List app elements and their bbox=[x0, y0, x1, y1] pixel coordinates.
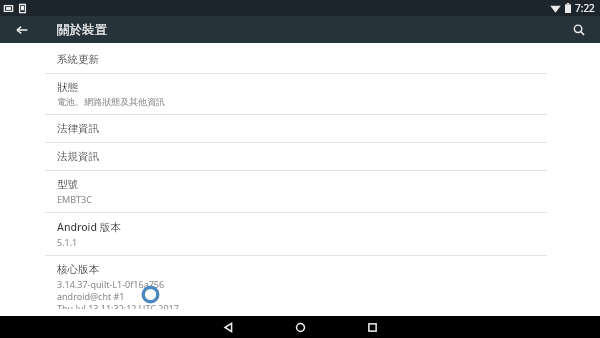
staticText: 系統更新 bbox=[57, 53, 99, 66]
button[interactable]: Home bbox=[264, 316, 336, 338]
button[interactable]: Back bbox=[0, 16, 44, 43]
button[interactable]: Recents bbox=[336, 316, 408, 338]
staticText: 3.14.37-quilt-L1-0f16a756 bbox=[57, 278, 165, 290]
staticText: 5.1.1 bbox=[57, 236, 78, 248]
button[interactable]: 法律資訊 bbox=[0, 115, 600, 142]
staticText: 7:22 bbox=[575, 1, 595, 15]
staticText: 狀態 bbox=[57, 81, 78, 94]
staticText: android@cht #1 bbox=[57, 290, 125, 302]
button[interactable]: Android 版本 bbox=[0, 213, 600, 255]
button[interactable]: 狀態 bbox=[0, 74, 600, 114]
staticText: 型號 bbox=[57, 178, 78, 191]
staticText: 關於裝置 bbox=[57, 22, 107, 38]
staticText: 電池、網路狀態及其他資訊 bbox=[57, 96, 165, 107]
staticText: EMBT3C bbox=[57, 193, 92, 205]
staticText: 核心版本 bbox=[57, 263, 99, 276]
staticText: Thu Jul 13 11:32:12 UTC 2017 bbox=[57, 302, 179, 309]
button[interactable]: 法規資訊 bbox=[0, 143, 600, 170]
button[interactable]: 型號 bbox=[0, 171, 600, 212]
staticText: 法規資訊 bbox=[57, 150, 99, 163]
staticText: 法律資訊 bbox=[57, 122, 99, 135]
button[interactable]: 核心版本 bbox=[0, 256, 600, 316]
staticText: Android 版本 bbox=[57, 220, 121, 234]
button[interactable]: Back bbox=[192, 316, 264, 338]
button[interactable]: 系統更新 bbox=[0, 46, 600, 73]
button[interactable]: Search bbox=[558, 16, 600, 43]
